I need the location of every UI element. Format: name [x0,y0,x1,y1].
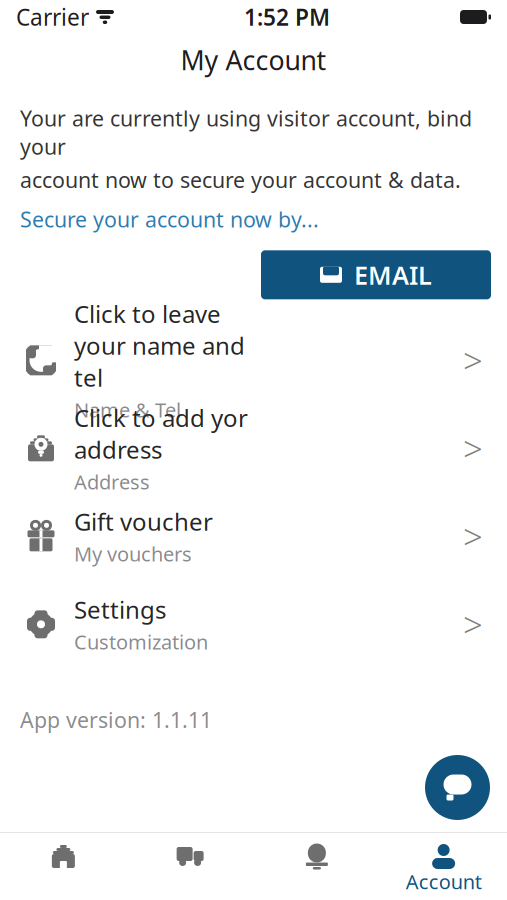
button[interactable]: Click to leave your name and tel [0,316,507,404]
staticText: EMAIL [354,258,432,292]
staticText: 1:52 PM [244,2,330,32]
staticText: > [463,337,483,383]
staticText: My vouchers [74,540,192,567]
button[interactable]: EMAIL [261,250,491,299]
staticText: Account [406,868,482,895]
staticText: > [463,425,483,471]
button[interactable]: Home [0,833,127,900]
button[interactable]: Account [380,833,507,900]
staticText: Settings [74,594,166,625]
staticText: > [463,513,483,559]
staticText: App version: 1.1.11 [20,706,212,734]
staticText: Gift voucher [74,506,213,537]
button[interactable]: Deliveries [127,833,254,900]
staticText: Name & Tel [74,396,181,423]
staticText: My Account [180,42,326,78]
button[interactable]: Click to add yor address [0,404,507,492]
staticText: Secure your account now by... [20,205,319,233]
staticText: Customization [74,628,208,655]
button[interactable]: Gift voucher [0,492,507,580]
staticText: Click to add yor address [74,402,248,465]
staticText: Address [74,468,150,495]
button[interactable]: Chat support [425,755,490,820]
button[interactable]: Secure your account now by... [20,201,319,237]
staticText: Click to leave your name and tel [74,298,245,393]
staticText: > [463,601,483,647]
staticText: account now to secure your account & dat… [20,166,461,194]
staticText: Your are currently using visitor account… [20,104,472,161]
button[interactable]: Notifications [253,833,380,900]
staticText: Carrier [16,2,89,32]
button[interactable]: Settings [0,580,507,668]
